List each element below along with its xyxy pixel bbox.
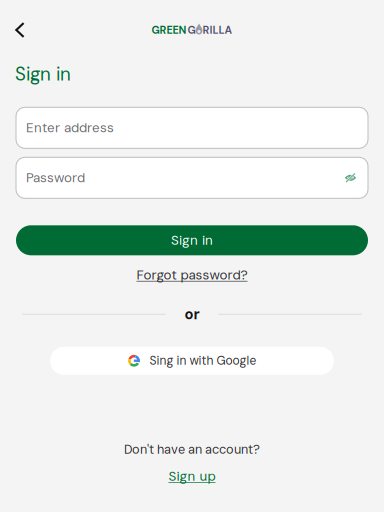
button[interactable]: Sing in with Google [50,347,334,375]
staticText: Enter address [26,119,114,136]
staticText: Don't have an account? [124,441,260,458]
staticText: Sign in [15,62,71,86]
staticText: GREEN [151,23,186,37]
staticText: G [187,23,195,37]
staticText: Sign up [168,468,215,485]
staticText: Sign in [171,232,213,249]
button[interactable]: Forgot password? [136,263,247,287]
button[interactable]: Sign in [16,225,368,255]
staticText: Sing in with Google [149,353,256,368]
button[interactable]: Show password [343,169,358,187]
staticText: Forgot password? [136,266,247,284]
button[interactable]: Back [0,14,37,46]
staticText: or [184,305,199,324]
staticText: Password [26,169,85,186]
button[interactable]: Sign up [168,465,215,488]
staticText: RILLA [202,23,232,37]
